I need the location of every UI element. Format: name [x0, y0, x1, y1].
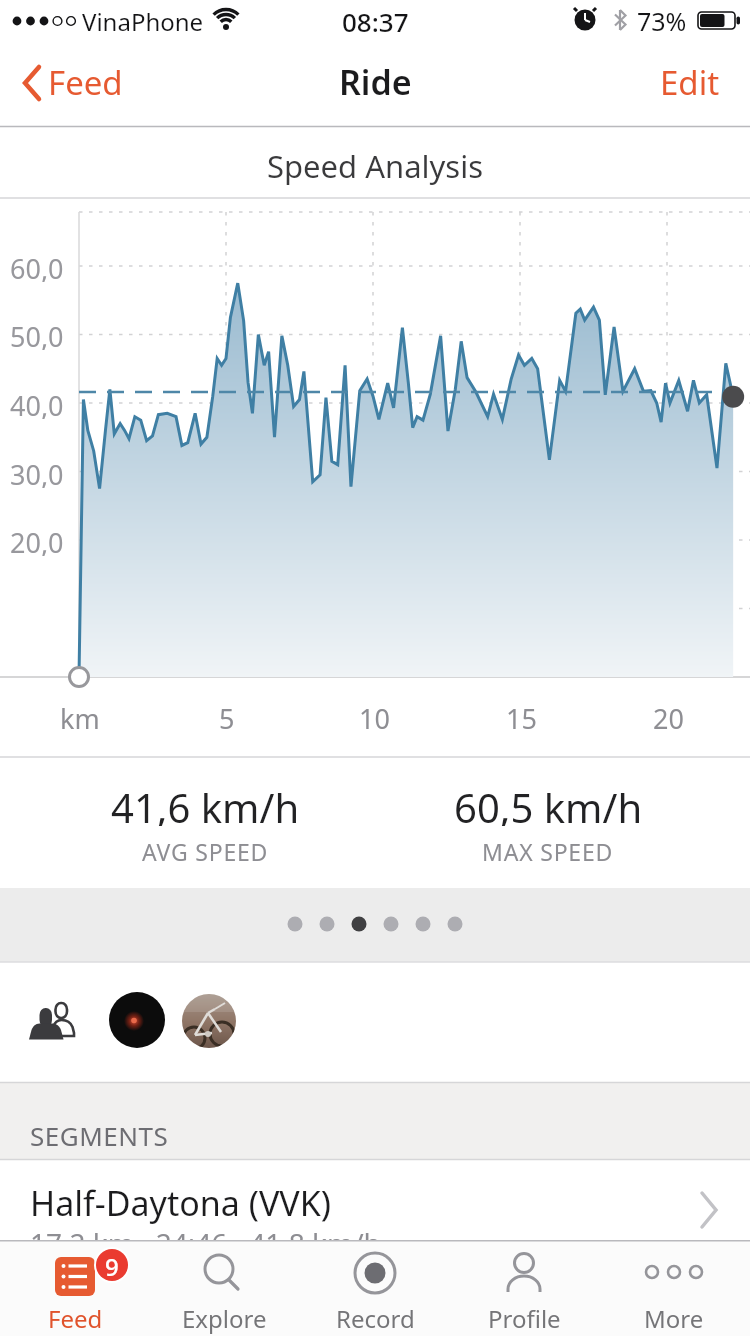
- staticText: 60,5 km/h: [454, 780, 643, 826]
- button[interactable]: Record: [0, 0, 120, 34]
- staticText: More: [644, 1302, 704, 1335]
- button[interactable]: Profile: [0, 0, 120, 34]
- staticText: AVG SPEED: [142, 836, 269, 864]
- button[interactable]: [450, 1240, 600, 1336]
- button[interactable]: [0, 1160, 750, 1240]
- staticText: 17,2 km 24:46 41,8 km/h: [30, 1224, 381, 1256]
- staticText: 73%: [637, 4, 687, 36]
- staticText: 15: [506, 700, 537, 732]
- staticText: 40,0: [10, 387, 64, 419]
- staticText: 08:37: [342, 4, 409, 36]
- staticText: Ride: [339, 59, 412, 105]
- staticText: Edit: [660, 60, 720, 105]
- staticText: 5: [219, 700, 235, 732]
- button[interactable]: [150, 1240, 300, 1336]
- staticText: SEGMENTS: [30, 1118, 169, 1150]
- staticText: 20: [653, 700, 684, 732]
- staticText: MAX SPEED: [482, 836, 614, 864]
- staticText: Feed: [48, 60, 123, 105]
- staticText: 9: [105, 1250, 119, 1280]
- button[interactable]: [600, 1240, 750, 1336]
- staticText: Feed: [48, 1302, 103, 1335]
- button[interactable]: [105, 988, 170, 1053]
- button[interactable]: [0, 1240, 150, 1336]
- button[interactable]: [20, 985, 90, 1055]
- staticText: 20,0: [10, 524, 64, 556]
- staticText: Explore: [182, 1302, 267, 1335]
- button[interactable]: [10, 52, 160, 114]
- button[interactable]: Feed: [0, 0, 120, 34]
- button[interactable]: Edit: [0, 0, 112, 48]
- staticText: Half-Daytona (VVK): [30, 1180, 331, 1224]
- button[interactable]: [178, 990, 240, 1052]
- staticText: 60,0: [10, 250, 64, 282]
- staticText: VinaPhone: [82, 5, 204, 37]
- button[interactable]: Explore: [0, 0, 120, 34]
- button[interactable]: [300, 1240, 450, 1336]
- staticText: 30,0: [10, 456, 64, 488]
- staticText: km: [60, 700, 100, 732]
- staticText: 41,6 km/h: [111, 780, 300, 826]
- staticText: Speed Analysis: [267, 145, 484, 187]
- staticText: 50,0: [10, 318, 64, 350]
- staticText: 10: [359, 700, 390, 732]
- staticText: Profile: [488, 1302, 561, 1335]
- button[interactable]: More: [0, 0, 120, 34]
- staticText: Record: [336, 1302, 415, 1335]
